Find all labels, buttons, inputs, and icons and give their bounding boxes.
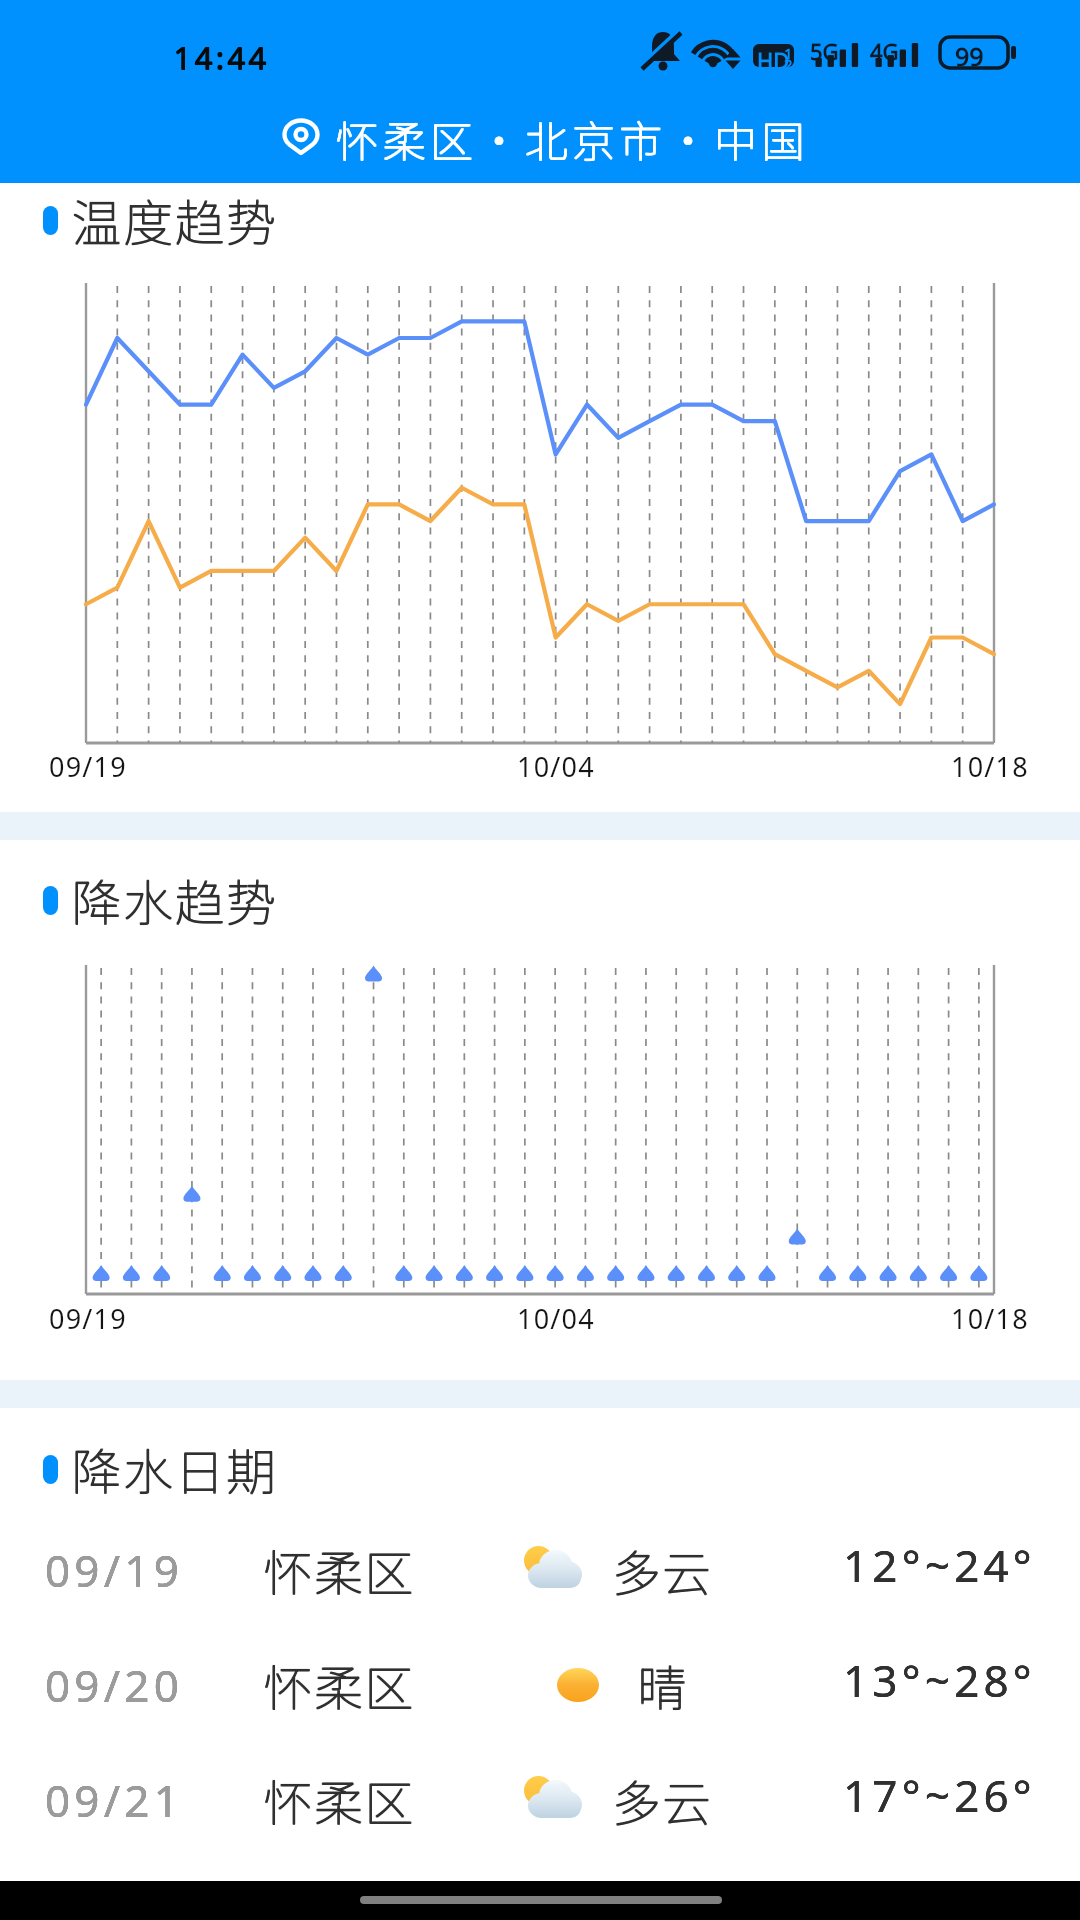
button[interactable]: 09/21 [0, 1742, 1080, 1857]
staticText: HD [757, 45, 790, 75]
staticText: 14:44 [174, 37, 271, 79]
staticText: 多云 [611, 1535, 713, 1606]
staticText: 怀柔区 [263, 1765, 415, 1836]
staticText: 09/21 [45, 1770, 184, 1830]
staticText: 降水趋势 [72, 863, 278, 935]
staticText: 怀柔区 [264, 1765, 416, 1836]
staticText: 多云 [611, 1764, 713, 1835]
staticText: 17°~26° [843, 1765, 1036, 1825]
staticText: 怀柔区・北京市・中国 [335, 108, 808, 170]
staticText: 14:44 [173, 37, 270, 79]
staticText: 怀柔区 [263, 1649, 415, 1720]
staticText: 怀柔区 [264, 1764, 416, 1835]
staticText: 17°~26° [843, 1765, 1036, 1825]
staticText: 5G [810, 36, 839, 66]
staticText: 怀柔区 [263, 1534, 415, 1605]
staticText: 怀柔区・北京市・中国 [336, 107, 809, 169]
staticText: 09/20 [45, 1655, 184, 1715]
staticText: 多云 [612, 1764, 714, 1835]
staticText: 温度趋势 [72, 183, 278, 255]
staticText: 多云 [612, 1534, 714, 1605]
staticText: 09/19 [45, 1540, 184, 1600]
staticText: 17°~26° [843, 1765, 1036, 1825]
staticText: 13°~28° [843, 1650, 1036, 1710]
staticText: 怀柔区 [263, 1650, 415, 1721]
staticText: 降水趋势 [71, 863, 277, 935]
staticText: 10/18 [951, 1300, 1029, 1337]
staticText: 多云 [611, 1534, 713, 1605]
staticText: 多云 [612, 1535, 714, 1606]
staticText: 怀柔区・北京市・中国 [336, 108, 809, 170]
staticText: 晴 [638, 1649, 689, 1720]
staticText: 12°~24° [843, 1535, 1036, 1595]
staticText: 降水日期 [72, 1432, 278, 1504]
staticText: 09/19 [49, 1300, 127, 1337]
staticText: 13°~28° [843, 1650, 1036, 1710]
staticText: 09/20 [45, 1655, 184, 1715]
staticText: 怀柔区 [264, 1649, 416, 1720]
staticText: 怀柔区 [263, 1535, 415, 1606]
staticText: 温度趋势 [72, 184, 278, 256]
staticText: 降水趋势 [72, 864, 278, 936]
staticText: 怀柔区 [263, 1764, 415, 1835]
staticText: 99 [955, 39, 984, 73]
button[interactable]: 09/19 [0, 1512, 1080, 1627]
staticText: 降水趋势 [71, 864, 277, 936]
staticText: 12°~24° [843, 1535, 1036, 1595]
staticText: 1 [784, 43, 793, 63]
staticText: 13°~28° [843, 1650, 1036, 1710]
staticText: 晴 [638, 1650, 689, 1721]
staticText: 4G [870, 36, 899, 66]
staticText: 14:44 [173, 36, 270, 78]
staticText: 怀柔区・北京市・中国 [335, 107, 808, 169]
staticText: 10/04 [517, 748, 595, 785]
staticText: 降水日期 [71, 1433, 277, 1505]
button[interactable]: 09/20 [0, 1627, 1080, 1742]
staticText: 怀柔区 [264, 1534, 416, 1605]
staticText: 09/20 [45, 1655, 184, 1715]
staticText: 温度趋势 [71, 183, 277, 255]
staticText: 10/18 [951, 748, 1029, 785]
staticText: 降水日期 [71, 1432, 277, 1504]
staticText: 09/19 [45, 1540, 184, 1600]
staticText: 09/21 [45, 1770, 184, 1830]
staticText: 09/19 [45, 1540, 184, 1600]
staticText: 09/20 [45, 1655, 184, 1715]
staticText: 13°~28° [843, 1650, 1036, 1710]
button[interactable]: Location 怀柔区・北京市・中国 [0, 92, 1080, 183]
button[interactable]: Home [360, 1896, 722, 1904]
staticText: 晴 [637, 1649, 688, 1720]
staticText: 12°~24° [843, 1535, 1036, 1595]
staticText: 晴 [637, 1650, 688, 1721]
staticText: 17°~26° [843, 1765, 1036, 1825]
staticText: 09/21 [45, 1770, 184, 1830]
staticText: 多云 [612, 1765, 714, 1836]
staticText: 09/19 [49, 748, 127, 785]
staticText: 10/04 [517, 1300, 595, 1337]
staticText: 09/21 [45, 1770, 184, 1830]
staticText: 温度趋势 [71, 184, 277, 256]
staticText: 12°~24° [843, 1535, 1036, 1595]
staticText: 降水日期 [72, 1433, 278, 1505]
staticText: 2 [784, 54, 793, 74]
staticText: 09/19 [45, 1540, 184, 1600]
staticText: 多云 [611, 1765, 713, 1836]
staticText: 14:44 [174, 36, 271, 78]
staticText: 怀柔区 [264, 1535, 416, 1606]
staticText: 怀柔区 [264, 1650, 416, 1721]
